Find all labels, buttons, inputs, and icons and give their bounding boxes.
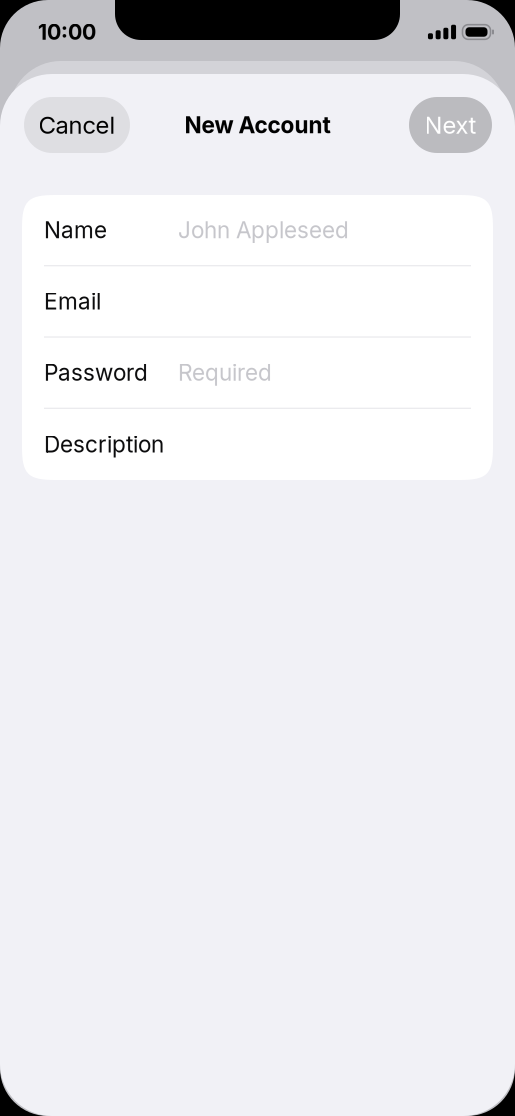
- button[interactable]: Cancel: [24, 97, 130, 153]
- staticText: Required: [178, 359, 272, 386]
- staticText: 10:00: [38, 19, 96, 45]
- button[interactable]: Email: [22, 266, 493, 336]
- staticText: John Appleseed: [178, 216, 349, 244]
- staticText: Email: [44, 288, 101, 315]
- button[interactable]: Password: [22, 337, 493, 408]
- staticText: Next: [424, 110, 476, 139]
- staticText: Description: [44, 431, 164, 458]
- staticText: Password: [44, 359, 148, 386]
- staticText: New Account: [184, 111, 330, 139]
- staticText: Name: [44, 216, 107, 244]
- button[interactable]: Description: [22, 409, 493, 480]
- button[interactable]: Next: [409, 97, 492, 153]
- button[interactable]: Name: [22, 195, 493, 265]
- staticText: Cancel: [38, 110, 115, 139]
